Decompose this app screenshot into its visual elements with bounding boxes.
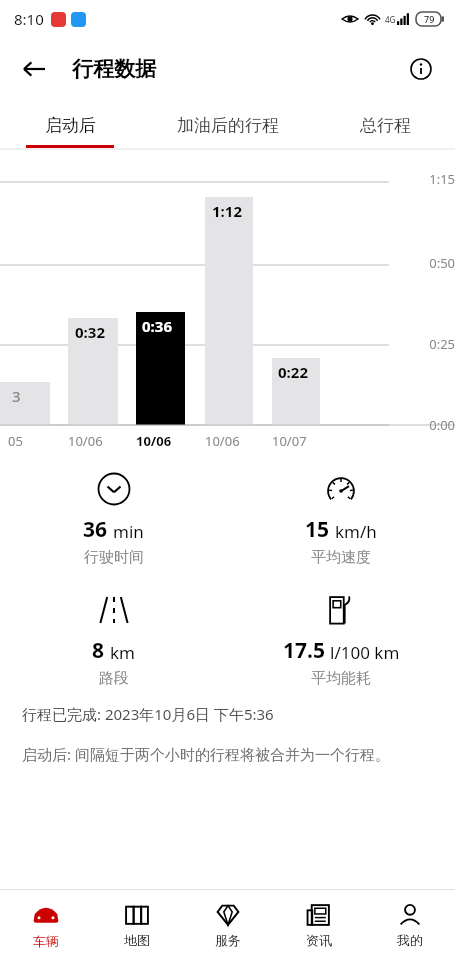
button[interactable]: 资讯 xyxy=(273,890,364,960)
staticText: 地图 xyxy=(124,932,150,948)
staticText: 路段 xyxy=(99,669,129,688)
staticText: 行程已完成: 2023年10月6日 下午5:36 xyxy=(22,704,274,724)
button[interactable]: 车辆 xyxy=(0,890,91,960)
staticText: 总行程 xyxy=(360,115,411,136)
staticText: 0:36 xyxy=(142,316,172,336)
staticText: 加油后的行程 xyxy=(177,115,279,136)
staticText: 0:00 xyxy=(395,416,455,434)
staticText: 8 xyxy=(92,636,105,665)
staticText: 行驶时间 xyxy=(84,548,144,567)
button[interactable]: 加油后的行程 xyxy=(140,100,315,150)
staticText: 17.5 xyxy=(283,636,325,665)
staticText: 0:50 xyxy=(395,254,455,272)
staticText: 车辆 xyxy=(33,933,59,949)
staticText: 启动后 xyxy=(45,115,96,136)
staticText: 10/06 xyxy=(68,432,103,450)
staticText: km xyxy=(110,641,135,664)
staticText: 10/06 xyxy=(205,432,240,450)
button[interactable]: 总行程 xyxy=(315,100,455,150)
staticText: 8:10 xyxy=(14,9,44,29)
staticText: 1:15 xyxy=(395,170,455,188)
staticText: 10/07 xyxy=(272,432,307,450)
button[interactable]: 36 xyxy=(0,472,227,567)
staticText: 服务 xyxy=(215,932,241,948)
staticText: 启动后: 间隔短于两个小时的行程将被合并为一个行程。 xyxy=(22,744,433,764)
staticText: 平均能耗 xyxy=(311,669,371,688)
staticText: 36 xyxy=(83,515,108,544)
staticText: 10/06 xyxy=(136,432,172,450)
button[interactable]: 8 xyxy=(0,593,227,688)
staticText: 1:12 xyxy=(212,201,242,221)
staticText: l/100 km xyxy=(330,641,400,664)
button[interactable]: 启动后 xyxy=(0,100,140,150)
staticText: 05 xyxy=(8,432,23,450)
button[interactable]: Information xyxy=(399,47,443,91)
staticText: 4G xyxy=(385,14,396,25)
staticText: 资讯 xyxy=(306,932,332,948)
staticText: 平均速度 xyxy=(311,548,371,567)
button[interactable]: Back xyxy=(12,47,56,91)
button[interactable]: 服务 xyxy=(182,890,273,960)
button[interactable]: 地图 xyxy=(91,890,182,960)
staticText: 0:25 xyxy=(395,335,455,353)
staticText: km/h xyxy=(335,520,377,543)
staticText: 79 xyxy=(424,13,435,25)
staticText: 15 xyxy=(305,515,330,544)
staticText: min xyxy=(113,520,144,543)
button[interactable]: 我的 xyxy=(364,890,455,960)
staticText: 行程数据 xyxy=(72,56,156,82)
staticText: 0:22 xyxy=(278,362,308,382)
staticText: 3 xyxy=(12,386,21,406)
staticText: 0:32 xyxy=(75,322,105,342)
button[interactable]: 17.5 xyxy=(227,593,455,688)
staticText: 我的 xyxy=(397,932,423,948)
button[interactable]: 15 xyxy=(227,472,455,567)
